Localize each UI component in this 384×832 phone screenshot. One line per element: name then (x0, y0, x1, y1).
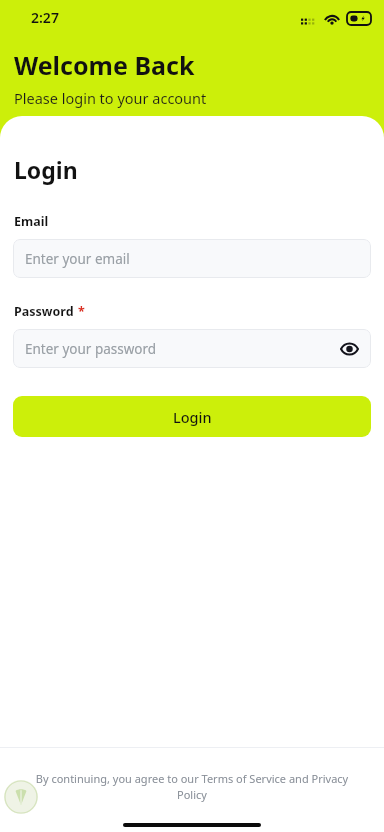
staticText: Please login to your account (14, 88, 207, 108)
button[interactable]: Enter your password (13, 329, 371, 368)
button[interactable]: By continuing, you agree to our Terms of… (26, 771, 358, 802)
staticText: Login (173, 407, 212, 427)
staticText: Enter your password (25, 340, 157, 358)
button[interactable]: Enter your email (13, 239, 371, 278)
staticText: Enter your email (25, 250, 130, 268)
staticText: Email (14, 213, 49, 230)
staticText: Welcome Back (14, 48, 195, 82)
button[interactable]: Show password (335, 335, 363, 363)
staticText: * (78, 303, 85, 320)
staticText: Password (14, 303, 74, 320)
staticText: 2:27 (31, 8, 59, 27)
button[interactable]: Login (13, 396, 371, 437)
staticText: Login (14, 154, 78, 185)
